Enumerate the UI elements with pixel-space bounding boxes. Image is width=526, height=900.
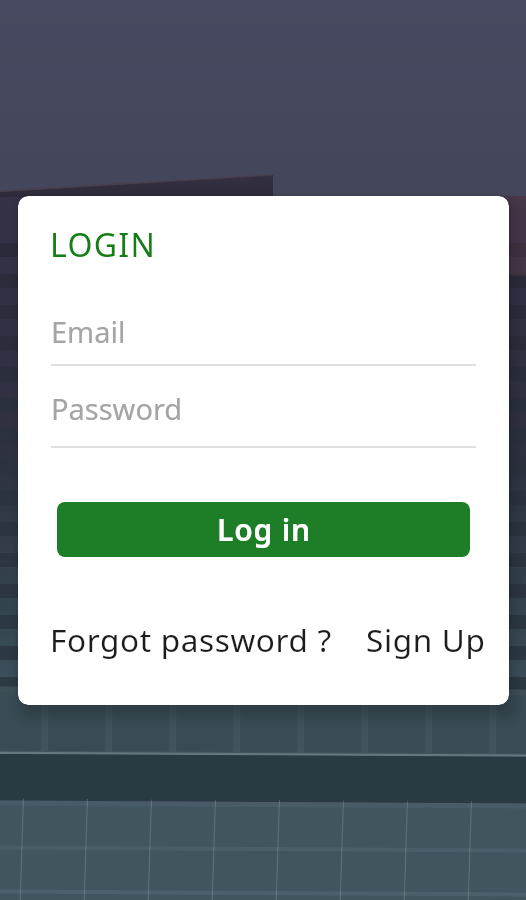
staticText: Sign Up [366, 618, 486, 661]
staticText: Forgot password ? [50, 618, 332, 661]
button[interactable]: Password [51, 376, 476, 441]
staticText: Log in [217, 509, 311, 550]
staticText: Email [51, 312, 126, 351]
staticText: Password [51, 389, 183, 428]
button[interactable]: Sign Up [366, 618, 486, 661]
button[interactable]: Forgot password ? [50, 618, 332, 661]
staticText: LOGIN [50, 223, 157, 267]
button[interactable]: Log in [57, 502, 470, 557]
button[interactable]: Email [51, 302, 476, 360]
